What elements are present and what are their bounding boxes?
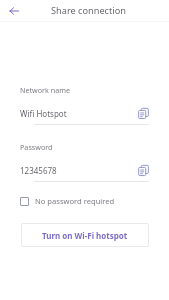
button[interactable]: Copy network name <box>135 105 151 121</box>
staticText: No password required <box>35 196 115 206</box>
staticText: Turn on Wi-Fi hotspot <box>42 230 128 241</box>
button[interactable]: Turn on Wi-Fi hotspot <box>21 223 149 247</box>
staticText: Share connection <box>51 4 126 17</box>
staticText: Wifi Hotspot <box>20 108 67 119</box>
button[interactable]: Back <box>4 1 24 21</box>
button[interactable]: Copy password <box>135 162 151 178</box>
staticText: Password <box>20 142 53 152</box>
staticText: Network name <box>20 85 71 95</box>
staticText: 12345678 <box>20 165 57 176</box>
button[interactable]: No password required <box>16 193 151 209</box>
